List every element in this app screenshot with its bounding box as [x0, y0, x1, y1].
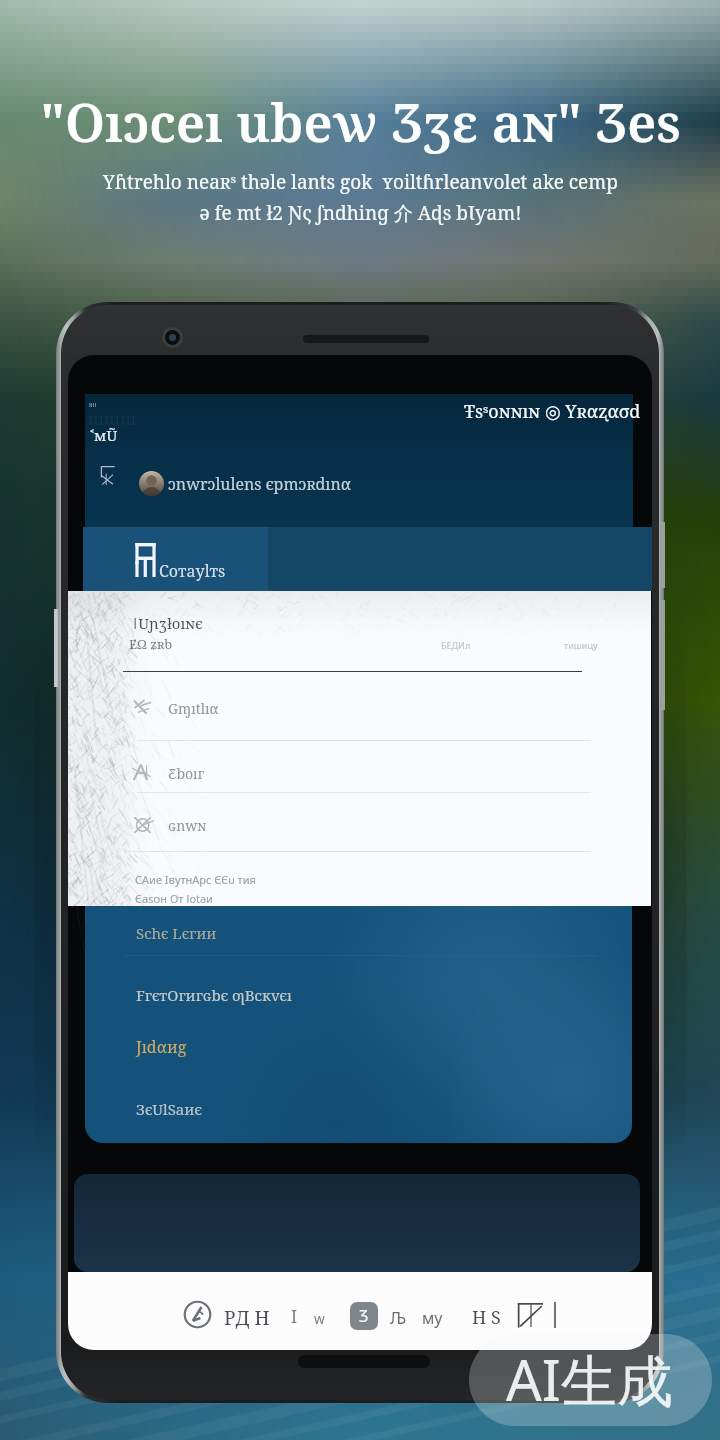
staticText: БЕДИл: [441, 639, 471, 651]
staticText: ɆΩ ʑʀƅ: [129, 635, 173, 653]
button[interactable]: Edit: [516, 1300, 546, 1330]
staticText: Coтaуlтs: [159, 560, 226, 582]
button[interactable]: Menu: [99, 465, 119, 485]
button[interactable]: FгєтOгигɢbє ƣBскvєı: [115, 976, 605, 1014]
staticText: ə fe mt ł2 Ɲς ʃndhinɡ 介 Aɖs bƖƴamǃ: [199, 200, 522, 226]
button[interactable]: Account avatar: [139, 471, 164, 496]
staticText: му: [422, 1307, 443, 1329]
button[interactable]: ЗєUlSaиє: [115, 1090, 605, 1128]
staticText: Ŧsˢoɴɴıɴ ◎ Yʀαʐασd: [464, 399, 641, 424]
button[interactable]: Gɱıtlıα: [122, 687, 592, 729]
staticText: ɔnwrɔlulenѕ єpmɔʀdınα: [168, 473, 351, 495]
staticText: ıııı: [89, 400, 97, 410]
staticText: FгєтOгигɢbє ƣBскvєı: [136, 985, 292, 1005]
staticText: Yɦtrehlo neaʀˢ thəle lants gok ʏoiltɦrle…: [103, 169, 618, 195]
staticText: тишицу: [564, 639, 598, 651]
button[interactable]: ɢnwɴ: [122, 804, 592, 846]
staticText: ɯɯɯ: [88, 407, 137, 430]
staticText: Gɱıtlıα: [168, 699, 219, 718]
staticText: ᴡ: [314, 1308, 325, 1328]
staticText: ˂мŨ: [90, 425, 118, 445]
staticText: Jıdαиg: [136, 1036, 187, 1058]
button[interactable]: Coтaуlтs: [83, 527, 268, 591]
staticText: Sсhє Lєгии: [136, 923, 217, 943]
staticText: ǀUɲʒłoıɴє: [132, 613, 203, 633]
staticText: ӏ: [291, 1304, 298, 1329]
staticText: AI生成: [506, 1341, 673, 1417]
staticText: "Oıɔceı ubeѡ Ʒʒɛ aɴ" Ʒes: [40, 86, 681, 157]
staticText: H S: [472, 1305, 501, 1330]
button[interactable]: Brand: [350, 1302, 378, 1330]
button[interactable]: Ƹboıг: [122, 752, 592, 794]
staticText: PД H: [224, 1305, 270, 1331]
staticText: Єaѕᴏн От Іоtaи: [135, 891, 213, 906]
button[interactable]: Sсhє Lєгии: [115, 914, 605, 952]
staticText: Ƹboıг: [168, 764, 205, 783]
button[interactable]: Home: [183, 1300, 212, 1329]
staticText: СAие IʙутнАрс ЄЄᴜ тия: [135, 872, 256, 887]
staticText: Љ: [390, 1307, 407, 1329]
staticText: ɢnwɴ: [168, 816, 207, 835]
button[interactable]: Jıdαиg: [115, 1028, 605, 1066]
staticText: Ʒ: [359, 1305, 369, 1327]
staticText: ЗєUlSaиє: [136, 1099, 202, 1119]
